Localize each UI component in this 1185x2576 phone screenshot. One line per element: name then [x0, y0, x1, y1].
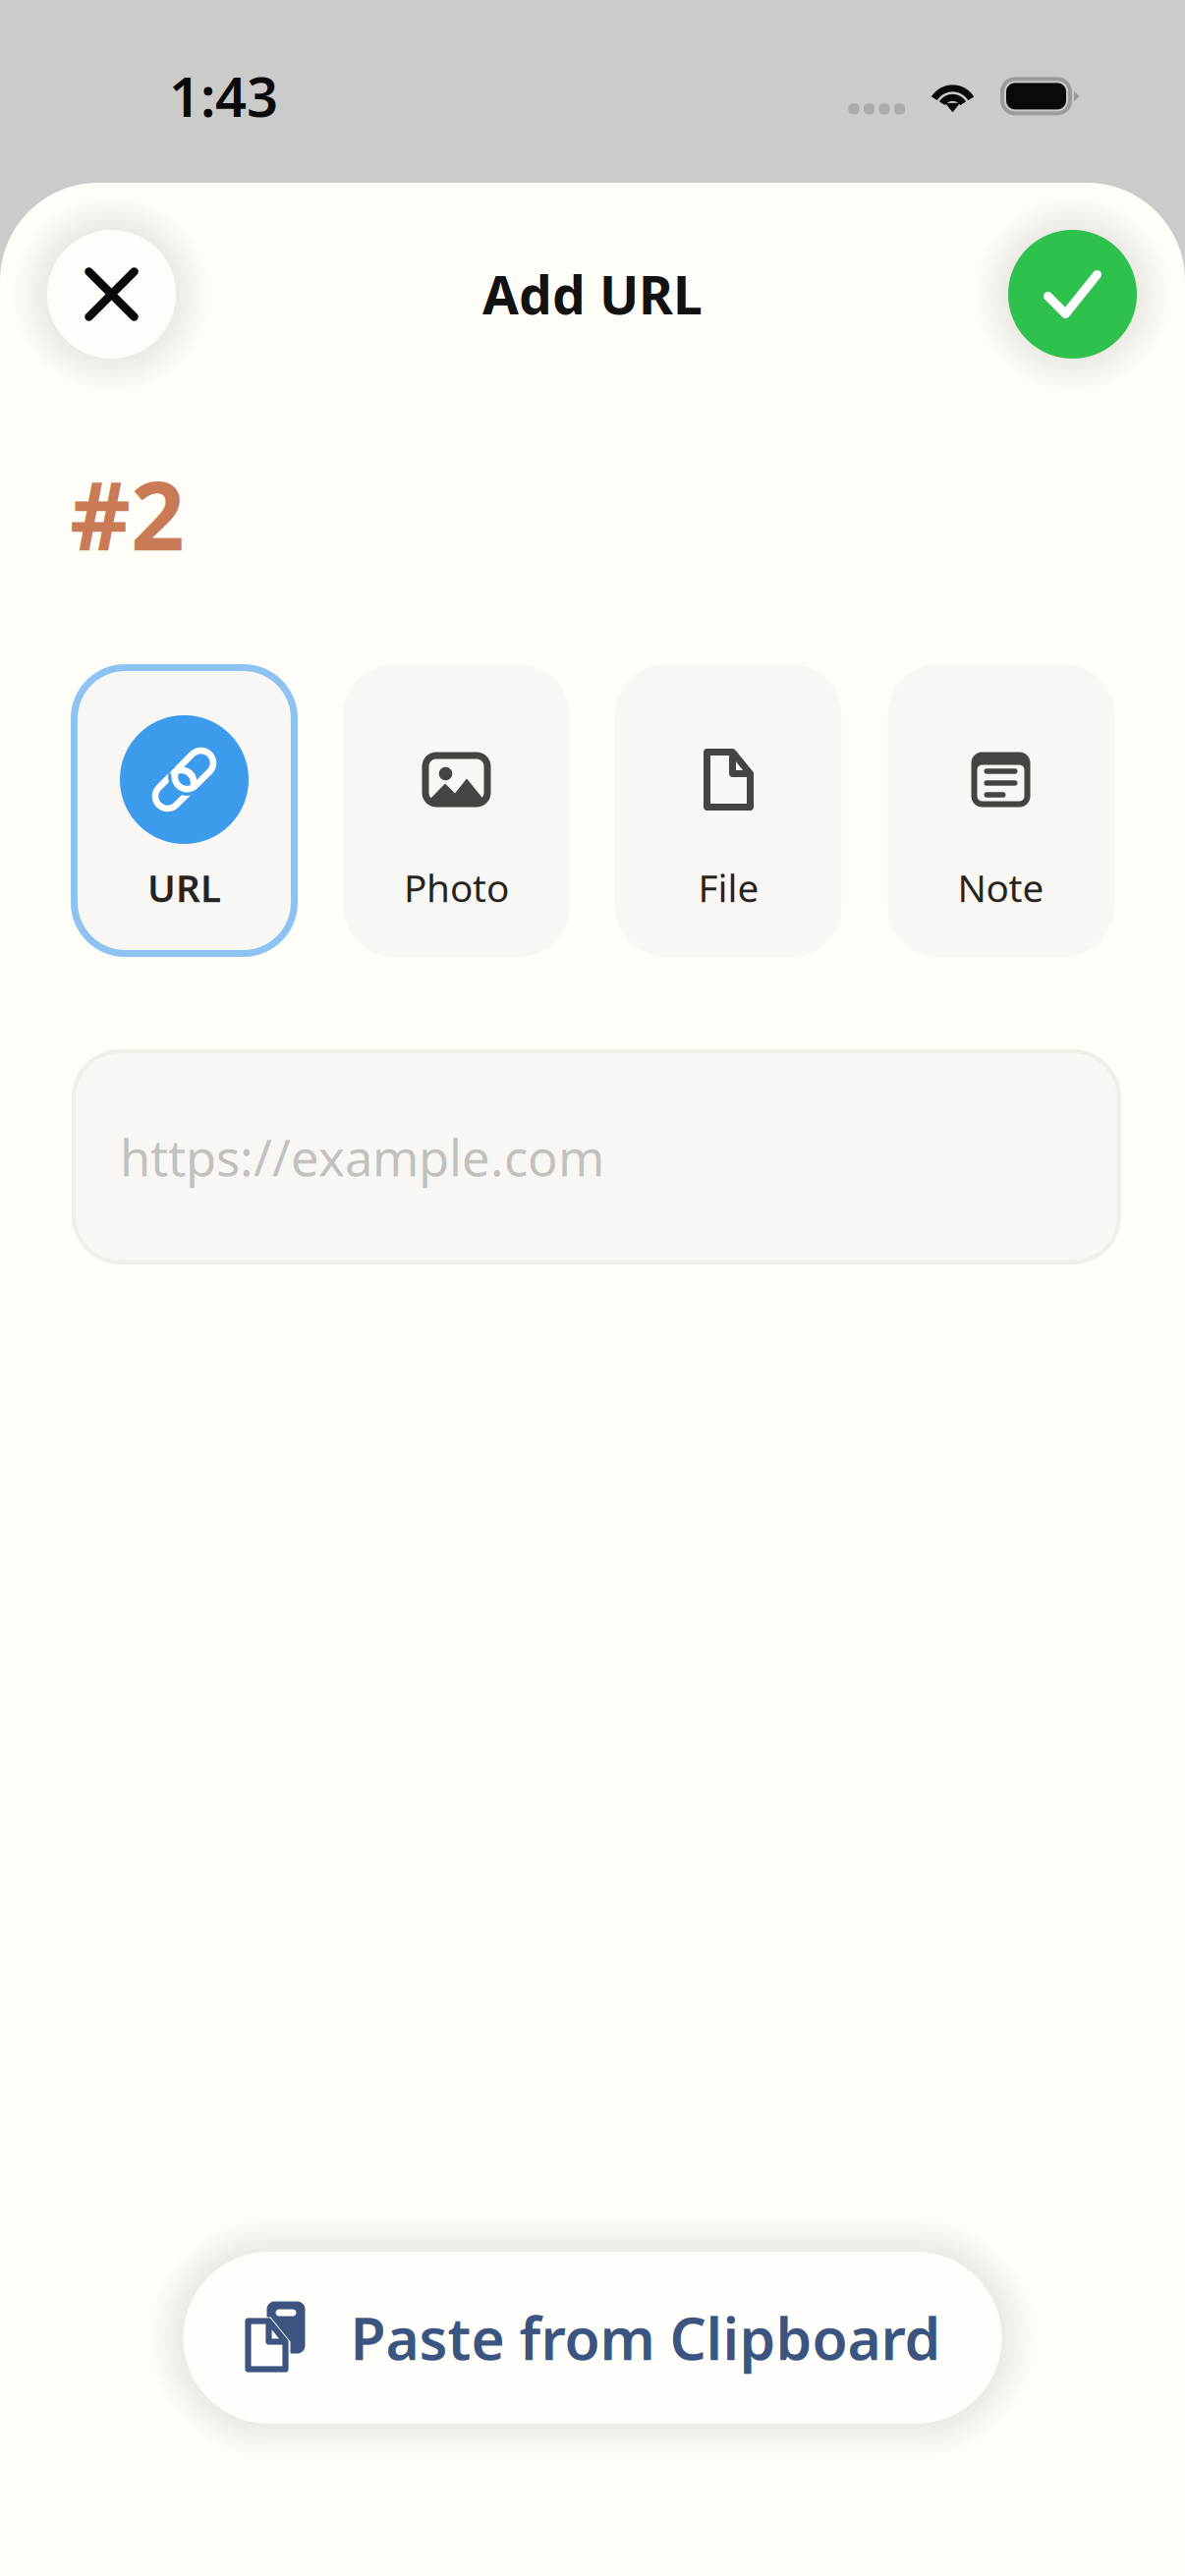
button[interactable]: Photo — [343, 664, 570, 957]
staticText: https://example.com — [120, 1124, 604, 1190]
button[interactable]: Save — [1008, 230, 1137, 359]
button[interactable]: Close — [47, 230, 176, 359]
staticText: Add URL — [482, 259, 703, 329]
staticText: Note — [958, 862, 1044, 913]
staticText: 1:43 — [169, 59, 278, 132]
button[interactable]: File — [615, 664, 842, 957]
staticText: Paste from Clipboard — [350, 2299, 941, 2376]
staticText: #2 — [70, 451, 185, 577]
staticText: Photo — [404, 862, 509, 913]
button[interactable]: Paste from Clipboard — [183, 2252, 1002, 2424]
button[interactable]: URL — [71, 664, 298, 957]
staticText: File — [698, 862, 759, 913]
staticText: URL — [147, 862, 221, 913]
button[interactable]: Note — [887, 664, 1114, 957]
